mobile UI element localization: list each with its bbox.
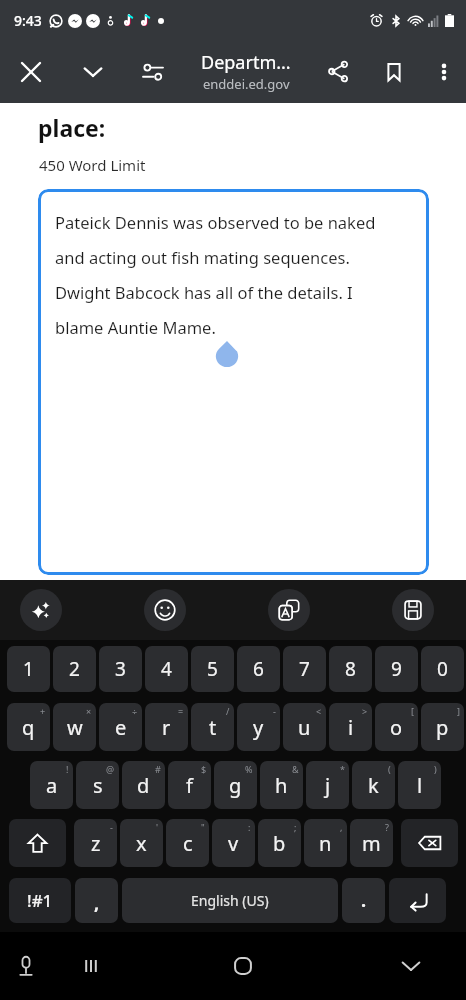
staticText: !: [66, 763, 69, 775]
button[interactable]: 2: [53, 646, 96, 692]
button[interactable]: Enter: [389, 878, 446, 923]
staticText: 4: [161, 656, 172, 682]
button[interactable]: 1: [7, 646, 50, 692]
button[interactable]: Clipboard: [392, 589, 434, 631]
staticText: e: [115, 714, 127, 741]
button[interactable]: Backspace: [401, 819, 458, 867]
button[interactable]: Shift: [9, 819, 66, 867]
staticText: 9: [391, 656, 402, 682]
button[interactable]: Close: [0, 40, 62, 103]
staticText: q: [22, 714, 35, 741]
staticText: c: [183, 830, 193, 857]
staticText: 0: [437, 656, 448, 682]
staticText: ]: [457, 705, 460, 717]
staticText: u: [298, 714, 311, 741]
button[interactable]: s: [76, 761, 119, 809]
staticText: p: [436, 714, 449, 741]
staticText: 7: [299, 656, 310, 682]
staticText: y: [253, 714, 264, 741]
button[interactable]: 5: [191, 646, 234, 692]
button[interactable]: Collapse: [62, 40, 124, 103]
button[interactable]: 9: [375, 646, 418, 692]
staticText: a: [46, 772, 58, 799]
button[interactable]: q: [7, 703, 50, 751]
staticText: j: [325, 772, 331, 799]
button[interactable]: 7: [283, 646, 326, 692]
button[interactable]: h: [260, 761, 303, 809]
staticText: 3: [115, 656, 126, 682]
button[interactable]: Departm...: [182, 50, 310, 93]
button[interactable]: Share: [310, 40, 366, 103]
button[interactable]: .: [342, 878, 385, 923]
button[interactable]: y: [237, 703, 280, 751]
button[interactable]: b: [258, 819, 301, 867]
staticText: [: [411, 705, 414, 717]
staticText: *: [340, 763, 345, 775]
staticText: k: [368, 772, 379, 799]
button[interactable]: i: [329, 703, 372, 751]
staticText: d: [137, 772, 150, 799]
button[interactable]: k: [352, 761, 395, 809]
button[interactable]: English (US): [122, 878, 338, 923]
staticText: enddei.ed.gov: [203, 75, 290, 93]
staticText: 2: [69, 656, 80, 682]
button[interactable]: l: [398, 761, 441, 809]
button[interactable]: 4: [145, 646, 188, 692]
staticText: ,: [340, 821, 343, 833]
staticText: Departm...: [201, 50, 291, 75]
button[interactable]: p: [421, 703, 464, 751]
button[interactable]: a: [30, 761, 73, 809]
button[interactable]: o: [375, 703, 418, 751]
button[interactable]: More options: [422, 40, 466, 103]
staticText: ,: [94, 891, 100, 916]
button[interactable]: r: [145, 703, 188, 751]
button[interactable]: 6: [237, 646, 280, 692]
staticText: ": [201, 821, 205, 833]
staticText: n: [319, 830, 332, 857]
button[interactable]: x: [120, 819, 163, 867]
button[interactable]: m: [350, 819, 393, 867]
staticText: v: [228, 830, 239, 857]
button[interactable]: n: [304, 819, 347, 867]
button[interactable]: 0: [421, 646, 464, 692]
staticText: f: [186, 772, 193, 799]
button[interactable]: v: [212, 819, 255, 867]
button[interactable]: t: [191, 703, 234, 751]
button[interactable]: Page info: [124, 40, 182, 103]
button[interactable]: Home: [129, 932, 356, 1000]
staticText: 450 Word Limit: [39, 155, 146, 175]
button[interactable]: Hide keyboard: [356, 932, 466, 1000]
button[interactable]: w: [53, 703, 96, 751]
button[interactable]: z: [74, 819, 117, 867]
button[interactable]: d: [122, 761, 165, 809]
staticText: place:: [38, 112, 106, 143]
button[interactable]: ,: [75, 878, 118, 923]
staticText: :: [248, 821, 251, 833]
button[interactable]: AI suggestions: [20, 589, 62, 631]
button[interactable]: Bookmark: [366, 40, 422, 103]
button[interactable]: Pateick Dennis was observed to be naked: [38, 189, 429, 575]
button[interactable]: 8: [329, 646, 372, 692]
staticText: =: [178, 705, 184, 717]
button[interactable]: Recent apps: [52, 932, 129, 1000]
button[interactable]: f: [168, 761, 211, 809]
staticText: >: [362, 705, 368, 717]
button[interactable]: j: [306, 761, 349, 809]
staticText: 5: [207, 656, 218, 682]
staticText: m: [362, 830, 381, 857]
button[interactable]: c: [166, 819, 209, 867]
staticText: Dwight Babcock has all of the details. I: [55, 281, 353, 303]
button[interactable]: Translate: [268, 589, 310, 631]
button[interactable]: !#1: [9, 878, 71, 923]
button[interactable]: Emoji: [144, 589, 186, 631]
staticText: 9:43: [14, 11, 42, 30]
button[interactable]: 3: [99, 646, 142, 692]
button[interactable]: e: [99, 703, 142, 751]
staticText: 1: [23, 656, 34, 682]
staticText: b: [273, 830, 286, 857]
button[interactable]: u: [283, 703, 326, 751]
staticText: ): [434, 763, 437, 775]
button[interactable]: Voice input: [0, 932, 52, 1000]
button[interactable]: g: [214, 761, 257, 809]
staticText: l: [417, 772, 423, 799]
